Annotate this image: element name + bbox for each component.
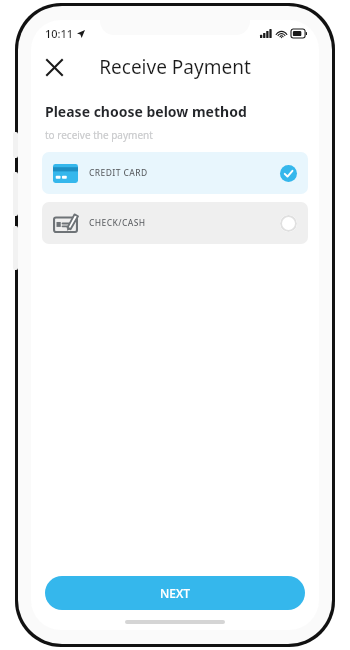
staticText: CREDIT CARD bbox=[89, 167, 148, 179]
staticText: Receive Payment bbox=[99, 54, 251, 80]
staticText: to receive the payment bbox=[45, 128, 153, 142]
staticText: NEXT bbox=[160, 585, 191, 601]
button[interactable]: CREDIT CARD bbox=[42, 152, 308, 194]
button[interactable]: NEXT bbox=[45, 576, 305, 610]
staticText: 10:11 bbox=[45, 26, 74, 41]
staticText: CHECK/CASH bbox=[89, 217, 146, 229]
staticText: Please choose below method bbox=[45, 102, 247, 121]
button[interactable]: CHECK/CASH bbox=[42, 202, 308, 244]
button[interactable]: Close bbox=[39, 52, 69, 82]
